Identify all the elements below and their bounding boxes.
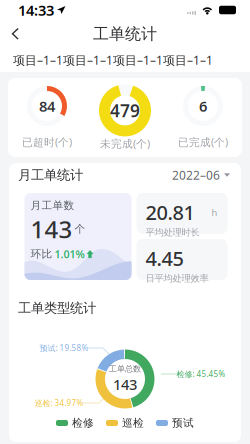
staticText: 1.01% <box>54 247 84 261</box>
button[interactable]: Back <box>0 20 32 48</box>
staticText: 月工单统计 <box>18 167 83 183</box>
staticText: 巡检 <box>122 416 144 429</box>
button[interactable]: 2022–06 <box>172 167 230 183</box>
staticText: h <box>211 206 217 218</box>
staticText: 未完成(个) <box>100 136 150 151</box>
staticText: 工单总数 <box>109 364 141 374</box>
staticText: 已超时(个) <box>22 135 72 149</box>
staticText: 个 <box>74 222 85 236</box>
staticText: 143 <box>30 213 72 245</box>
staticText: 479 <box>110 99 140 122</box>
staticText: 预试 <box>172 416 194 429</box>
staticText: 检修: 45.45% <box>176 369 225 379</box>
staticText: 14:33 <box>18 0 54 20</box>
staticText: 工单统计 <box>93 24 157 44</box>
staticText: 巡检: 34.97% <box>34 398 83 408</box>
staticText: 检修 <box>72 416 94 429</box>
staticText: 预试: 19.58% <box>39 343 88 353</box>
staticText: 84 <box>39 96 55 116</box>
staticText: 平均处理时长 <box>145 227 199 238</box>
staticText: 2022–06 <box>172 167 220 183</box>
staticText: 143 <box>113 375 137 394</box>
staticText: 环比 <box>30 247 52 261</box>
staticText: 项目–1–1项目–1–1项目–1–1项目–1–1 <box>13 52 213 68</box>
staticText: 20.81 <box>145 199 194 226</box>
staticText: 4.45 <box>145 245 183 272</box>
staticText: 日平均处理效率 <box>145 273 208 284</box>
staticText: 月工单数 <box>30 199 74 212</box>
staticText: 6 <box>199 96 207 116</box>
staticText: 工单类型统计 <box>18 300 96 316</box>
staticText: 已完成(个) <box>178 135 228 149</box>
